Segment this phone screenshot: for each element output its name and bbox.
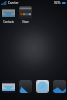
staticText: 92% — [54, 1, 61, 5]
button[interactable]: Browser — [34, 80, 51, 93]
staticText: Contacts — [3, 20, 14, 24]
button[interactable]: Store — [17, 6, 34, 24]
button[interactable]: Contacts — [0, 6, 17, 24]
staticText: Store — [22, 20, 29, 24]
button[interactable]: Maps — [51, 80, 67, 93]
button[interactable]: Photos — [17, 80, 34, 93]
button[interactable]: Mail — [0, 80, 17, 93]
staticText: Carrier — [8, 1, 19, 5]
